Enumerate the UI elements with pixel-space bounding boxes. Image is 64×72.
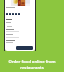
staticText: Order food online from (8, 59, 56, 65)
button[interactable]: Category (6, 13, 8, 15)
staticText: restaurants (20, 65, 44, 71)
button[interactable] (16, 46, 33, 50)
button[interactable]: Category (18, 13, 20, 15)
button[interactable]: Category (9, 13, 11, 15)
button[interactable]: Category (15, 13, 17, 15)
button[interactable]: Category (12, 13, 14, 15)
